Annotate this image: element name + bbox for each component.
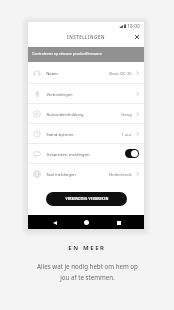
staticText: 1 uur: [121, 132, 132, 138]
staticText: Taal meldingen: [46, 172, 76, 178]
button[interactable]: Naam: [28, 62, 144, 83]
staticText: Bose QC 35: [109, 71, 132, 77]
button[interactable]: Verbindingen: [28, 84, 144, 103]
button[interactable]: Controleren op nieuwe productfirmware: [28, 47, 144, 62]
staticText: Ruisonderdrukking: [46, 112, 84, 118]
button[interactable]: Recent apps: [113, 218, 124, 227]
staticText: Gesproken meldingen: [46, 152, 90, 158]
staticText: Controleren op nieuwe productfirmware: [32, 51, 102, 56]
staticText: 18:00: [127, 23, 140, 30]
button[interactable]: VERBINDING VERBREKEN: [46, 192, 127, 206]
staticText: VERBINDING VERBREKEN: [65, 197, 109, 201]
staticText: Hoog: [121, 112, 132, 118]
staticText: Nederlands: [109, 172, 132, 178]
button[interactable]: Gesproken meldingen toggle: [125, 149, 139, 158]
staticText: Verbindingen: [46, 92, 73, 98]
staticText: jou af te stemmen.: [60, 273, 115, 281]
button[interactable]: Home: [81, 218, 92, 227]
button[interactable]: Close: [132, 32, 141, 41]
staticText: Stand-bytimer: [46, 132, 74, 138]
button[interactable]: Ruisonderdrukking: [28, 104, 144, 123]
button[interactable]: Gesproken meldingen: [28, 144, 144, 163]
staticText: Naam: [46, 71, 58, 77]
button[interactable]: Stand-bytimer: [28, 124, 144, 143]
button[interactable]: Back: [49, 218, 60, 227]
button[interactable]: Taal meldingen: [28, 164, 144, 183]
staticText: INSTELLINGEN: [67, 34, 105, 40]
staticText: Alles wat je nodig hebt om hem op: [37, 262, 138, 270]
staticText: EN MEER: [68, 244, 106, 252]
